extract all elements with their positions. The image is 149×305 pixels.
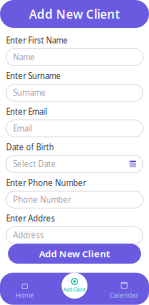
staticText: Name: [13, 52, 35, 62]
button[interactable]: Name: [6, 49, 143, 66]
staticText: Calendar: [110, 291, 139, 300]
button[interactable]: Home: [0, 278, 50, 304]
staticText: Surname: [13, 87, 46, 98]
staticText: Enter Addres: [6, 213, 55, 224]
staticText: Phone Number: [13, 194, 71, 205]
staticText: Select Date: [13, 159, 56, 169]
button[interactable]: Surname: [6, 84, 143, 101]
staticText: Home: [15, 291, 34, 300]
button[interactable]: Add Client: [61, 273, 87, 299]
button[interactable]: Address: [6, 227, 143, 244]
staticText: Add New Client: [39, 247, 110, 260]
staticText: Add New Client: [29, 6, 120, 22]
staticText: Enter Surname: [6, 71, 61, 81]
staticText: Add Client: [63, 286, 86, 293]
staticText: Address: [13, 230, 44, 240]
button[interactable]: Phone Number: [6, 191, 143, 208]
staticText: Date of Birth: [6, 142, 54, 152]
button[interactable]: Calendar: [99, 278, 149, 304]
staticText: Enter First Name: [6, 35, 68, 46]
button[interactable]: Select Date: [6, 155, 143, 172]
button[interactable]: Email: [6, 120, 143, 137]
button[interactable]: Add New Client: [8, 244, 141, 264]
staticText: Enter Email: [6, 106, 47, 117]
staticText: Enter Phone Number: [6, 177, 86, 188]
staticText: Email: [13, 123, 32, 134]
